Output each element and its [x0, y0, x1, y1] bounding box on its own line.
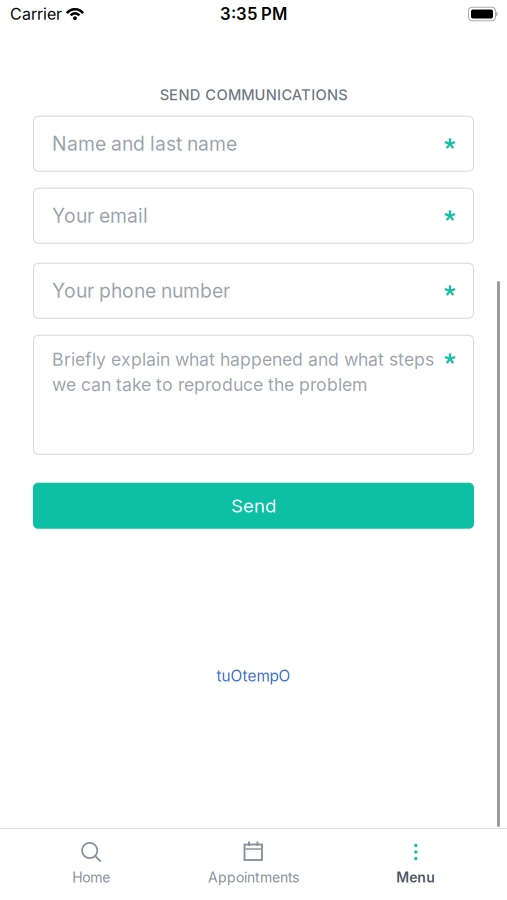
button[interactable]: Home	[10, 841, 172, 886]
button[interactable]: Name and last name	[33, 116, 474, 172]
staticText: Send	[231, 494, 276, 517]
staticText: Name and last name	[52, 132, 237, 155]
staticText: Your phone number	[52, 279, 230, 302]
staticText: we can take to reproduce the problem	[52, 374, 367, 395]
button[interactable]: Your phone number	[33, 263, 474, 319]
staticText: Carrier	[10, 4, 62, 24]
staticText: Home	[72, 869, 110, 886]
button[interactable]: Send	[33, 483, 474, 529]
staticText: Menu	[396, 869, 435, 886]
staticText: 3:35 PM	[220, 4, 287, 24]
staticText: Appointments	[208, 869, 299, 886]
staticText: SEND COMMUNICATIONS	[160, 86, 347, 104]
button[interactable]: Your email	[33, 188, 474, 244]
staticText: Briefly explain what happened and what s…	[52, 349, 434, 370]
staticText: Your email	[52, 204, 148, 227]
button[interactable]: Briefly explain what happened and what s…	[33, 335, 474, 455]
button[interactable]: Appointments	[172, 841, 335, 886]
staticText: tuOtempO	[216, 667, 290, 685]
button[interactable]: Menu	[335, 841, 497, 886]
button[interactable]: tuOtempO	[216, 667, 290, 685]
